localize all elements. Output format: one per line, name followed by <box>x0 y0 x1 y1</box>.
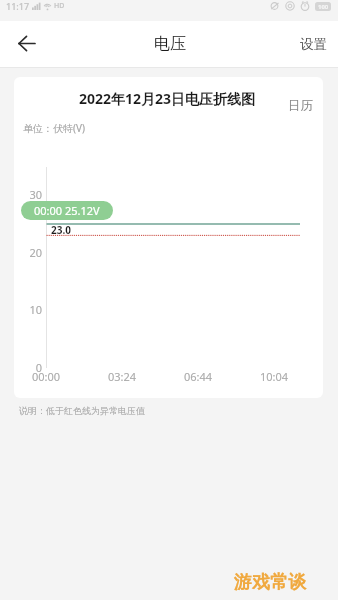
staticText: HD <box>54 1 65 11</box>
staticText: 10:04 <box>260 369 289 384</box>
staticText: 0 <box>17 360 42 375</box>
staticText: 20 <box>17 245 42 260</box>
staticText: 电压 <box>154 34 186 54</box>
staticText: 30 <box>17 187 42 202</box>
staticText: 23.0 <box>51 223 71 237</box>
staticText: 100 <box>318 3 329 11</box>
staticText: 11:17 <box>6 0 30 12</box>
staticText: 00:00 25.12V <box>34 203 100 218</box>
staticText: 03:24 <box>108 369 137 384</box>
staticText: 日历 <box>288 98 313 114</box>
button[interactable]: Back <box>6 21 47 65</box>
button[interactable]: 日历 <box>278 92 322 120</box>
staticText: 00:00 <box>32 369 61 384</box>
staticText: 06:44 <box>184 369 213 384</box>
button[interactable]: 设置 <box>286 23 338 66</box>
button[interactable]: 00:00 25.12V <box>21 201 113 220</box>
staticText: 设置 <box>300 36 327 53</box>
staticText: 单位：伏特(V) <box>23 121 85 135</box>
staticText: 10 <box>17 302 42 317</box>
staticText: 游戏常谈 <box>234 571 306 594</box>
staticText: 说明：低于红色线为异常电压值 <box>19 405 145 416</box>
staticText: 2022年12月23日电压折线图 <box>79 89 256 108</box>
